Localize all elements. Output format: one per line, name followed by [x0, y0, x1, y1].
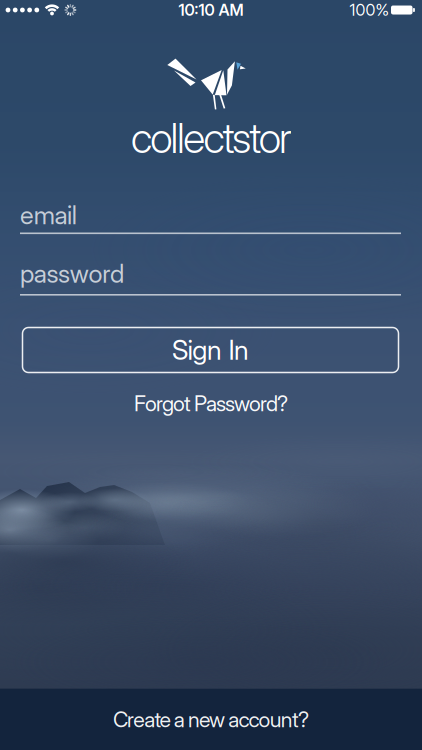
button[interactable]: Sign In — [22, 327, 398, 372]
button[interactable]: password — [20, 249, 401, 298]
staticText: email — [20, 200, 77, 230]
button[interactable]: email — [20, 190, 401, 236]
button[interactable]: Forgot Password? — [134, 391, 288, 416]
button[interactable]: Create a new account? — [0, 689, 422, 750]
staticText: Create a new account? — [113, 707, 309, 732]
staticText: collectstor — [131, 114, 291, 162]
staticText: password — [20, 259, 124, 288]
staticText: 10:10 AM — [178, 1, 243, 19]
staticText: Forgot Password? — [134, 391, 288, 416]
staticText: Sign In — [172, 334, 249, 366]
staticText: 100% — [349, 1, 389, 19]
